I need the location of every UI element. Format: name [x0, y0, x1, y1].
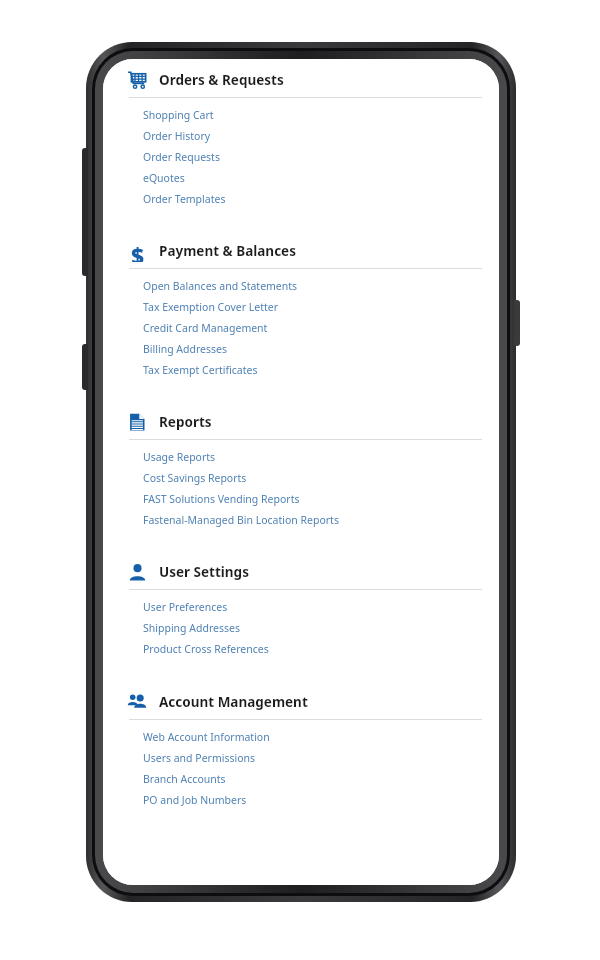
- staticText: Product Cross References: [143, 642, 269, 656]
- staticText: Branch Accounts: [143, 772, 226, 786]
- staticText: Open Balances and Statements: [143, 279, 298, 293]
- button[interactable]: User Preferences: [143, 596, 482, 617]
- button[interactable]: Order Requests: [143, 146, 482, 167]
- staticText: Tax Exemption Cover Letter: [143, 300, 278, 314]
- other: Assistant: [82, 344, 88, 390]
- button[interactable]: Open Balances and Statements: [143, 275, 482, 296]
- staticText: PO and Job Numbers: [143, 793, 247, 807]
- staticText: User Preferences: [143, 600, 228, 614]
- staticText: $: [131, 241, 144, 262]
- button[interactable]: Billing Addresses: [143, 338, 482, 359]
- button[interactable]: Order History: [143, 125, 482, 146]
- staticText: Shopping Cart: [143, 108, 214, 122]
- button[interactable]: Usage Reports: [143, 446, 482, 467]
- button[interactable]: PO and Job Numbers: [143, 789, 482, 810]
- button[interactable]: Tax Exempt Certificates: [143, 359, 482, 380]
- staticText: Cost Savings Reports: [143, 471, 247, 485]
- button[interactable]: Product Cross References: [143, 638, 482, 659]
- staticText: Orders & Requests: [159, 71, 284, 89]
- staticText: Order Requests: [143, 150, 220, 164]
- button[interactable]: Fastenal-Managed Bin Location Reports: [143, 509, 482, 530]
- other: Power: [514, 300, 520, 346]
- button[interactable]: Order Templates: [143, 188, 482, 209]
- staticText: Shipping Addresses: [143, 621, 240, 635]
- button[interactable]: Web Account Information: [143, 726, 482, 747]
- staticText: Order History: [143, 129, 211, 143]
- button[interactable]: Shipping Addresses: [143, 617, 482, 638]
- button[interactable]: Credit Card Management: [143, 317, 482, 338]
- staticText: User Settings: [159, 563, 249, 581]
- button[interactable]: Branch Accounts: [143, 768, 482, 789]
- button[interactable]: Tax Exemption Cover Letter: [143, 296, 482, 317]
- staticText: FAST Solutions Vending Reports: [143, 492, 300, 506]
- staticText: Users and Permissions: [143, 751, 256, 765]
- staticText: Payment & Balances: [159, 242, 296, 260]
- staticText: Web Account Information: [143, 730, 270, 744]
- staticText: Order Templates: [143, 192, 226, 206]
- staticText: Reports: [159, 413, 212, 431]
- staticText: Account Management: [159, 693, 308, 711]
- staticText: Tax Exempt Certificates: [143, 363, 258, 377]
- button[interactable]: FAST Solutions Vending Reports: [143, 488, 482, 509]
- staticText: eQuotes: [143, 171, 185, 185]
- button[interactable]: Shopping Cart: [143, 104, 482, 125]
- button[interactable]: Users and Permissions: [143, 747, 482, 768]
- button[interactable]: Cost Savings Reports: [143, 467, 482, 488]
- staticText: Credit Card Management: [143, 321, 268, 335]
- button[interactable]: eQuotes: [143, 167, 482, 188]
- staticText: Billing Addresses: [143, 342, 228, 356]
- staticText: Fastenal-Managed Bin Location Reports: [143, 513, 339, 527]
- staticText: Usage Reports: [143, 450, 216, 464]
- other: Volume: [82, 148, 88, 276]
